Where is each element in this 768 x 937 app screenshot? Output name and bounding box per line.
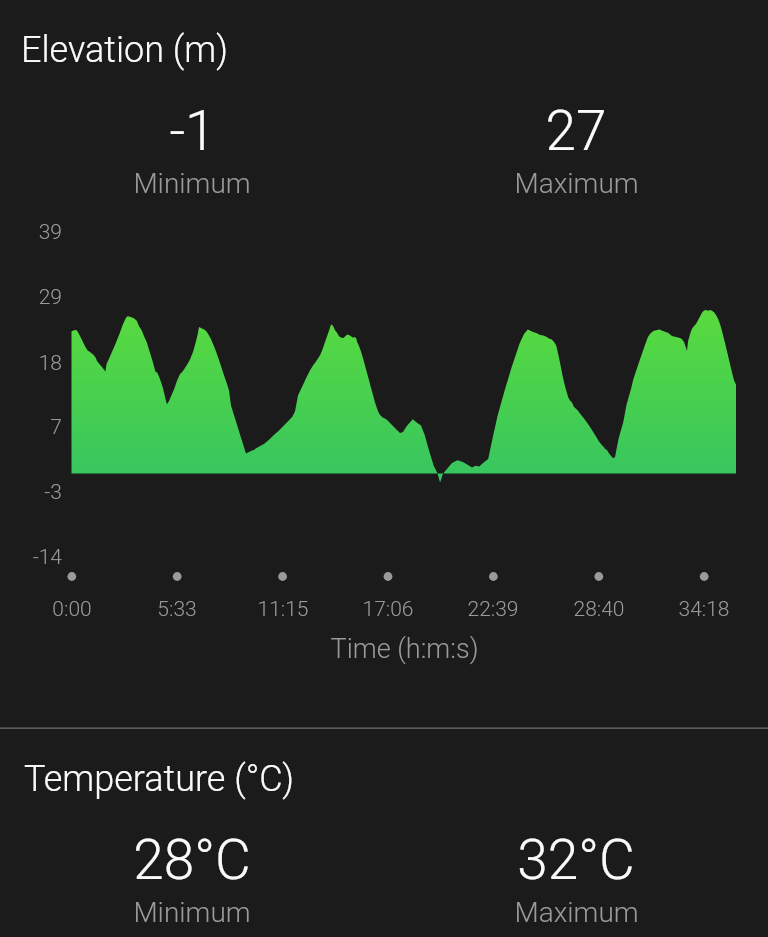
staticText: Maximum: [514, 896, 639, 929]
staticText: Maximum: [514, 167, 639, 200]
staticText: 32°C: [517, 828, 635, 892]
button[interactable]: 28°C: [0, 828, 384, 929]
staticText: 7: [0, 415, 62, 440]
staticText: Temperature (°C): [24, 758, 294, 800]
staticText: 27: [545, 99, 607, 163]
staticText: 22:39: [433, 597, 553, 622]
button[interactable]: -1: [0, 99, 384, 200]
staticText: 29: [0, 285, 62, 310]
staticText: Time (h:m:s): [40, 633, 768, 665]
staticText: -14: [0, 545, 62, 570]
other: Elevation profile chart: [0, 0, 768, 937]
staticText: Minimum: [133, 167, 251, 200]
staticText: 5:33: [117, 597, 237, 622]
staticText: 0:00: [12, 597, 132, 622]
staticText: 34:18: [644, 597, 764, 622]
staticText: -1: [169, 99, 216, 163]
staticText: 39: [0, 220, 62, 245]
staticText: 11:15: [223, 597, 343, 622]
staticText: 18: [0, 351, 62, 376]
button[interactable]: Elevation (m): [21, 29, 228, 71]
staticText: Elevation (m): [21, 29, 228, 71]
button[interactable]: 27: [384, 99, 768, 200]
staticText: -3: [0, 480, 62, 505]
button[interactable]: Temperature (°C): [24, 758, 294, 800]
staticText: 28°C: [133, 828, 251, 892]
staticText: 28:40: [539, 597, 659, 622]
staticText: Minimum: [133, 896, 251, 929]
button[interactable]: 32°C: [384, 828, 768, 929]
staticText: 17:06: [328, 597, 448, 622]
